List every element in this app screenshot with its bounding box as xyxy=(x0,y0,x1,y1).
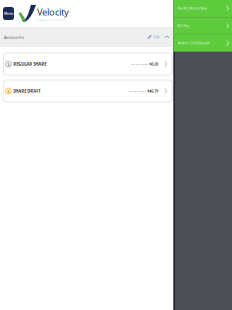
staticText: SHARE DRAFT xyxy=(13,88,40,94)
button[interactable]: Edit xyxy=(145,27,161,47)
staticText: $0.20 xyxy=(149,61,158,67)
button[interactable]: Bill Pay xyxy=(173,17,232,35)
staticText: Mobile Check Deposit xyxy=(177,41,209,45)
staticText: $ xyxy=(7,87,10,95)
staticText: Accounts xyxy=(4,34,24,40)
staticText: Menu xyxy=(4,11,13,16)
staticText: Transfer Money Now xyxy=(177,6,206,10)
button[interactable]: $ xyxy=(3,80,172,102)
button[interactable]: Menu xyxy=(3,7,14,20)
staticText: Edit xyxy=(153,35,159,39)
staticText: C R E D I T U N I O N xyxy=(38,18,65,21)
button[interactable]: $ xyxy=(3,53,172,75)
staticText: Available balance xyxy=(131,62,148,66)
button[interactable]: Mobile Check Deposit xyxy=(173,35,232,52)
button[interactable]: Collapse accounts xyxy=(161,27,172,47)
staticText: Bill Pay xyxy=(177,24,188,28)
staticText: Velocity xyxy=(37,6,69,18)
staticText: $ xyxy=(7,60,10,68)
staticText: Available balance xyxy=(129,89,146,93)
button[interactable]: Transfer Money Now xyxy=(173,0,232,17)
staticText: $46.79 xyxy=(147,88,158,94)
staticText: REGULAR SHARE xyxy=(13,61,46,67)
